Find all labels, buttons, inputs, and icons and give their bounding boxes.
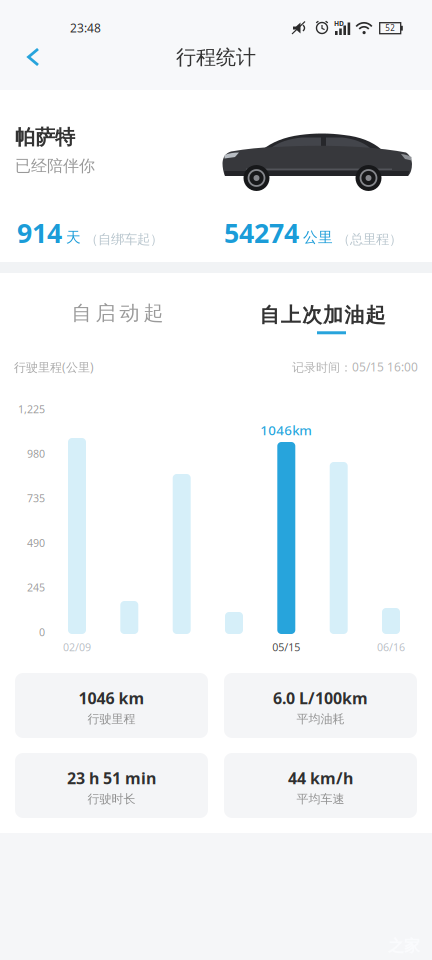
staticText: 44 km/h <box>288 767 353 789</box>
staticText: 1046 km <box>78 687 144 709</box>
staticText: 动 <box>119 301 139 325</box>
staticText: 54274 <box>224 215 299 250</box>
staticText: 行程统计 <box>176 45 256 70</box>
staticText: 6.0 L/100km <box>273 687 368 709</box>
staticText: 行驶时长 <box>87 792 135 806</box>
staticText: （自绑车起） <box>85 231 163 247</box>
staticText: 735 <box>27 491 45 505</box>
staticText: 自 <box>71 301 91 325</box>
staticText: 启 <box>95 301 115 325</box>
button[interactable]: 1046 km <box>15 673 208 738</box>
staticText: 行驶里程(公里) <box>14 359 94 375</box>
staticText: 油 <box>344 303 364 327</box>
staticText: 06/16 <box>377 640 405 654</box>
staticText: 245 <box>27 580 45 594</box>
staticText: 02/09 <box>63 640 91 654</box>
button[interactable]: 自 <box>63 295 171 331</box>
button[interactable]: 44 km/h <box>224 753 417 818</box>
staticText: 自 <box>259 303 279 327</box>
staticText: 加 <box>323 303 343 327</box>
staticText: 上 <box>281 303 301 327</box>
staticText: 次 <box>302 303 322 327</box>
staticText: 起 <box>143 301 163 325</box>
staticText: 490 <box>27 536 45 550</box>
staticText: HD <box>334 19 344 28</box>
button[interactable]: 6.0 L/100km <box>224 673 417 738</box>
staticText: 52 <box>385 23 395 33</box>
staticText: 记录时间：05/15 16:00 <box>292 359 418 375</box>
staticText: 1046km <box>260 421 312 439</box>
staticText: 天 <box>62 228 85 246</box>
staticText: 980 <box>27 446 45 461</box>
staticText: 平均车速 <box>296 792 344 806</box>
staticText: 05/15 <box>272 640 300 654</box>
staticText: 平均油耗 <box>296 712 344 726</box>
button[interactable]: 23 h 51 min <box>15 753 208 818</box>
staticText: 0 <box>39 625 45 639</box>
staticText: 帕萨特 <box>15 125 75 150</box>
staticText: 公里 <box>299 228 337 246</box>
staticText: 914 <box>17 215 62 250</box>
button[interactable]: 自 <box>259 303 385 334</box>
button[interactable]: Back <box>16 37 51 77</box>
staticText: （总里程） <box>337 231 402 247</box>
staticText: 已经陪伴你 <box>15 156 95 176</box>
staticText: 23 h 51 min <box>67 767 156 789</box>
staticText: 起 <box>365 303 385 327</box>
staticText: 23:48 <box>70 20 101 36</box>
staticText: 行驶里程 <box>87 712 135 726</box>
staticText: 1,225 <box>18 402 45 416</box>
